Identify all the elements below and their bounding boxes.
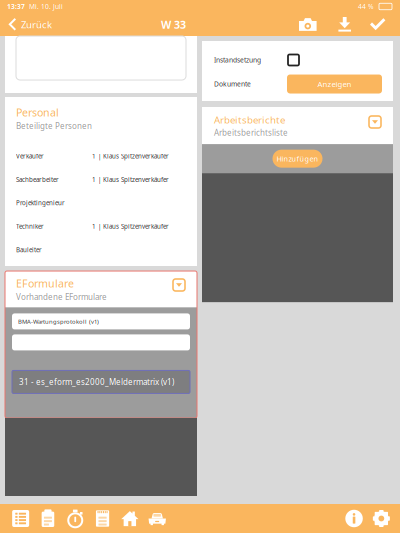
staticText: Anzeigen — [317, 79, 351, 89]
staticText: Beteiligte Personen — [16, 120, 92, 131]
button[interactable]: Hinzufügen — [272, 150, 322, 168]
button[interactable]: Zurück — [0, 13, 58, 36]
staticText: Hinzufügen — [276, 154, 318, 164]
staticText: Verkäufer — [16, 152, 44, 160]
staticText: Vorhandene EFormulare — [16, 291, 107, 302]
button[interactable]: Anzeigen — [287, 74, 382, 93]
staticText: 13:37 — [7, 2, 25, 11]
button[interactable]: Info — [340, 504, 368, 533]
button[interactable]: Reports — [34, 504, 62, 533]
staticText: Dokumente — [214, 79, 251, 89]
staticText: Mi. 10. Juli — [25, 2, 63, 11]
button[interactable]: Notes — [89, 504, 116, 533]
staticText: W 33 — [161, 17, 186, 32]
staticText: 44 % — [358, 2, 374, 11]
staticText: 1 | Klaus Spitzenverkäufer — [92, 222, 169, 230]
staticText: Arbeitsberichte — [214, 113, 285, 126]
staticText: BMA-Wartungsprotokoll (v1) — [18, 317, 99, 325]
button[interactable]: Vehicles — [143, 504, 171, 533]
button[interactable]: Arbeitsberichte options — [368, 113, 382, 129]
staticText: Instandsetzung — [214, 55, 261, 65]
button[interactable]: Download — [327, 13, 363, 36]
staticText: EFormulare — [16, 276, 74, 290]
staticText: 1 | Klaus Spitzenverkäufer — [92, 152, 169, 160]
staticText: Techniker — [16, 222, 44, 230]
staticText: Sachbearbeiter — [16, 175, 59, 184]
button[interactable]: Time tracking — [62, 504, 89, 533]
button[interactable]: Home — [116, 504, 143, 533]
button[interactable]: Settings — [368, 504, 395, 533]
staticText: Personal — [16, 105, 59, 119]
button[interactable]: EFormulare options — [172, 276, 186, 292]
staticText: Zurück — [21, 18, 52, 31]
staticText: 31 - es_eform_es2000_Meldermatrix (v1) — [19, 376, 174, 387]
staticText: Arbeitsberichtsliste — [214, 127, 288, 138]
button[interactable]: Overview — [7, 504, 34, 533]
button[interactable]: Done — [363, 13, 393, 36]
staticText: 1 | Klaus Spitzenverkäufer — [92, 175, 169, 184]
staticText: Bauleiter — [16, 245, 42, 254]
button[interactable]: Camera — [289, 13, 327, 36]
staticText: Projektingenieur — [16, 199, 65, 207]
